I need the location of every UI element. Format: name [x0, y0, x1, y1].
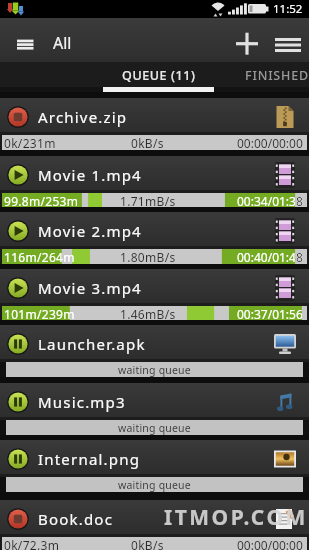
staticText: Movie 3.mp4: [38, 278, 142, 298]
staticText: 00:40/01:48: [237, 249, 303, 264]
staticText: 1.46mB/s: [120, 306, 176, 321]
staticText: 00:00/00:00: [237, 135, 303, 150]
button[interactable]: Movie 3.mp4: [0, 264, 309, 321]
button[interactable]: Movie 2.mp4: [0, 207, 309, 264]
staticText: waiting queue: [118, 421, 191, 435]
button[interactable]: [8, 32, 44, 58]
staticText: 11:52: [273, 1, 303, 17]
staticText: QUEUE (11): [122, 67, 196, 84]
staticText: Movie 2.mp4: [38, 221, 142, 241]
staticText: Launcher.apk: [38, 334, 146, 354]
staticText: All: [53, 32, 72, 54]
staticText: 00:34/01:38: [237, 193, 303, 208]
button[interactable]: Movie 1.mp4: [0, 151, 309, 208]
staticText: 116m/264m: [4, 249, 75, 264]
staticText: 0k/231m: [4, 135, 56, 150]
staticText: 00:40/01:48: [237, 249, 303, 264]
staticText: 0kB/s: [131, 135, 164, 150]
staticText: 1.71mB/s: [120, 193, 176, 208]
button[interactable]: Launcher.apk: [0, 320, 309, 377]
button[interactable]: FINISHED: [234, 62, 309, 92]
staticText: 0kB/s: [131, 537, 164, 550]
staticText: 00:34/01:38: [237, 193, 303, 208]
button[interactable]: [266, 26, 309, 62]
button[interactable]: Internal.png: [0, 435, 309, 492]
staticText: 99.8m/253m: [4, 193, 79, 208]
staticText: 00:37/01:56: [237, 306, 303, 321]
staticText: 101m/239m: [4, 306, 75, 321]
staticText: 00:00/00:00: [237, 537, 303, 550]
button[interactable]: [228, 26, 266, 62]
staticText: Music.mp3: [38, 392, 126, 412]
staticText: Movie 1.mp4: [38, 165, 142, 185]
staticText: 0k/72.3m: [4, 537, 60, 550]
staticText: 00:37/01:56: [237, 306, 303, 321]
staticText: Book.doc: [38, 509, 114, 529]
button[interactable]: Music.mp3: [0, 378, 309, 435]
staticText: FINISHED: [245, 67, 309, 84]
staticText: waiting queue: [118, 363, 191, 377]
staticText: Internal.png: [38, 449, 141, 469]
staticText: ITMOP.COM: [164, 503, 308, 532]
button[interactable]: Archive.zip: [0, 93, 309, 150]
staticText: waiting queue: [118, 478, 191, 492]
staticText: 1.80mB/s: [120, 249, 176, 264]
staticText: Archive.zip: [38, 107, 128, 127]
button[interactable]: Book.doc: [0, 495, 309, 550]
button[interactable]: QUEUE (11): [103, 62, 214, 92]
